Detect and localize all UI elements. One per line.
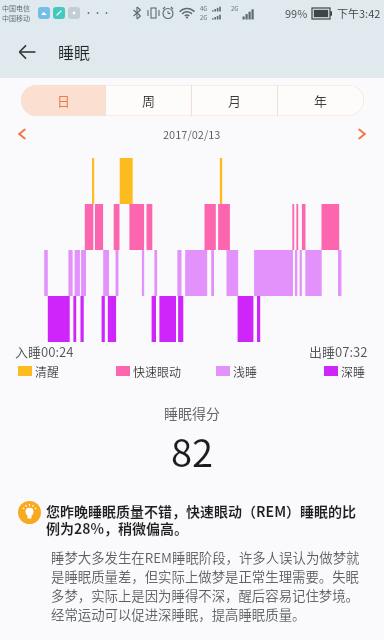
- staticText: 睡眠: [58, 40, 91, 63]
- staticText: 出睡07:32: [309, 342, 368, 359]
- button[interactable]: Back: [10, 35, 44, 69]
- button[interactable]: Previous day: [12, 124, 32, 144]
- staticText: 睡梦大多发生在REM睡眠阶段，许多人误认为做梦就是睡眠质量差，但实际上做梦是正常…: [51, 547, 371, 623]
- staticText: 月: [228, 91, 242, 110]
- staticText: 4G: [200, 4, 208, 13]
- staticText: 2017/02/13: [163, 126, 221, 142]
- staticText: 下午3:42: [337, 5, 381, 21]
- button[interactable]: 年: [278, 85, 364, 116]
- staticText: 日: [57, 91, 71, 110]
- staticText: 入睡00:24: [15, 342, 74, 359]
- button[interactable]: 日: [21, 85, 106, 116]
- staticText: 82: [171, 423, 214, 467]
- staticText: 2G: [200, 13, 208, 22]
- staticText: 年: [314, 91, 328, 110]
- staticText: 2G: [231, 4, 239, 13]
- staticText: 99%: [285, 5, 308, 21]
- staticText: 深睡: [341, 363, 366, 379]
- staticText: ···: [84, 6, 112, 19]
- staticText: 中国移动: [2, 13, 30, 23]
- staticText: 周: [142, 91, 156, 110]
- staticText: 浅睡: [233, 363, 258, 379]
- button[interactable]: Next day: [352, 124, 372, 144]
- staticText: 您昨晚睡眠质量不错，快速眼动（REM）睡眠的比例为28%，稍微偏高。: [46, 501, 369, 538]
- staticText: 快速眼动: [133, 363, 182, 379]
- staticText: 睡眠得分: [164, 403, 220, 423]
- button[interactable]: 周: [106, 85, 192, 116]
- button[interactable]: 月: [192, 85, 278, 116]
- staticText: 中国电信: [2, 3, 30, 13]
- staticText: 清醒: [35, 363, 60, 379]
